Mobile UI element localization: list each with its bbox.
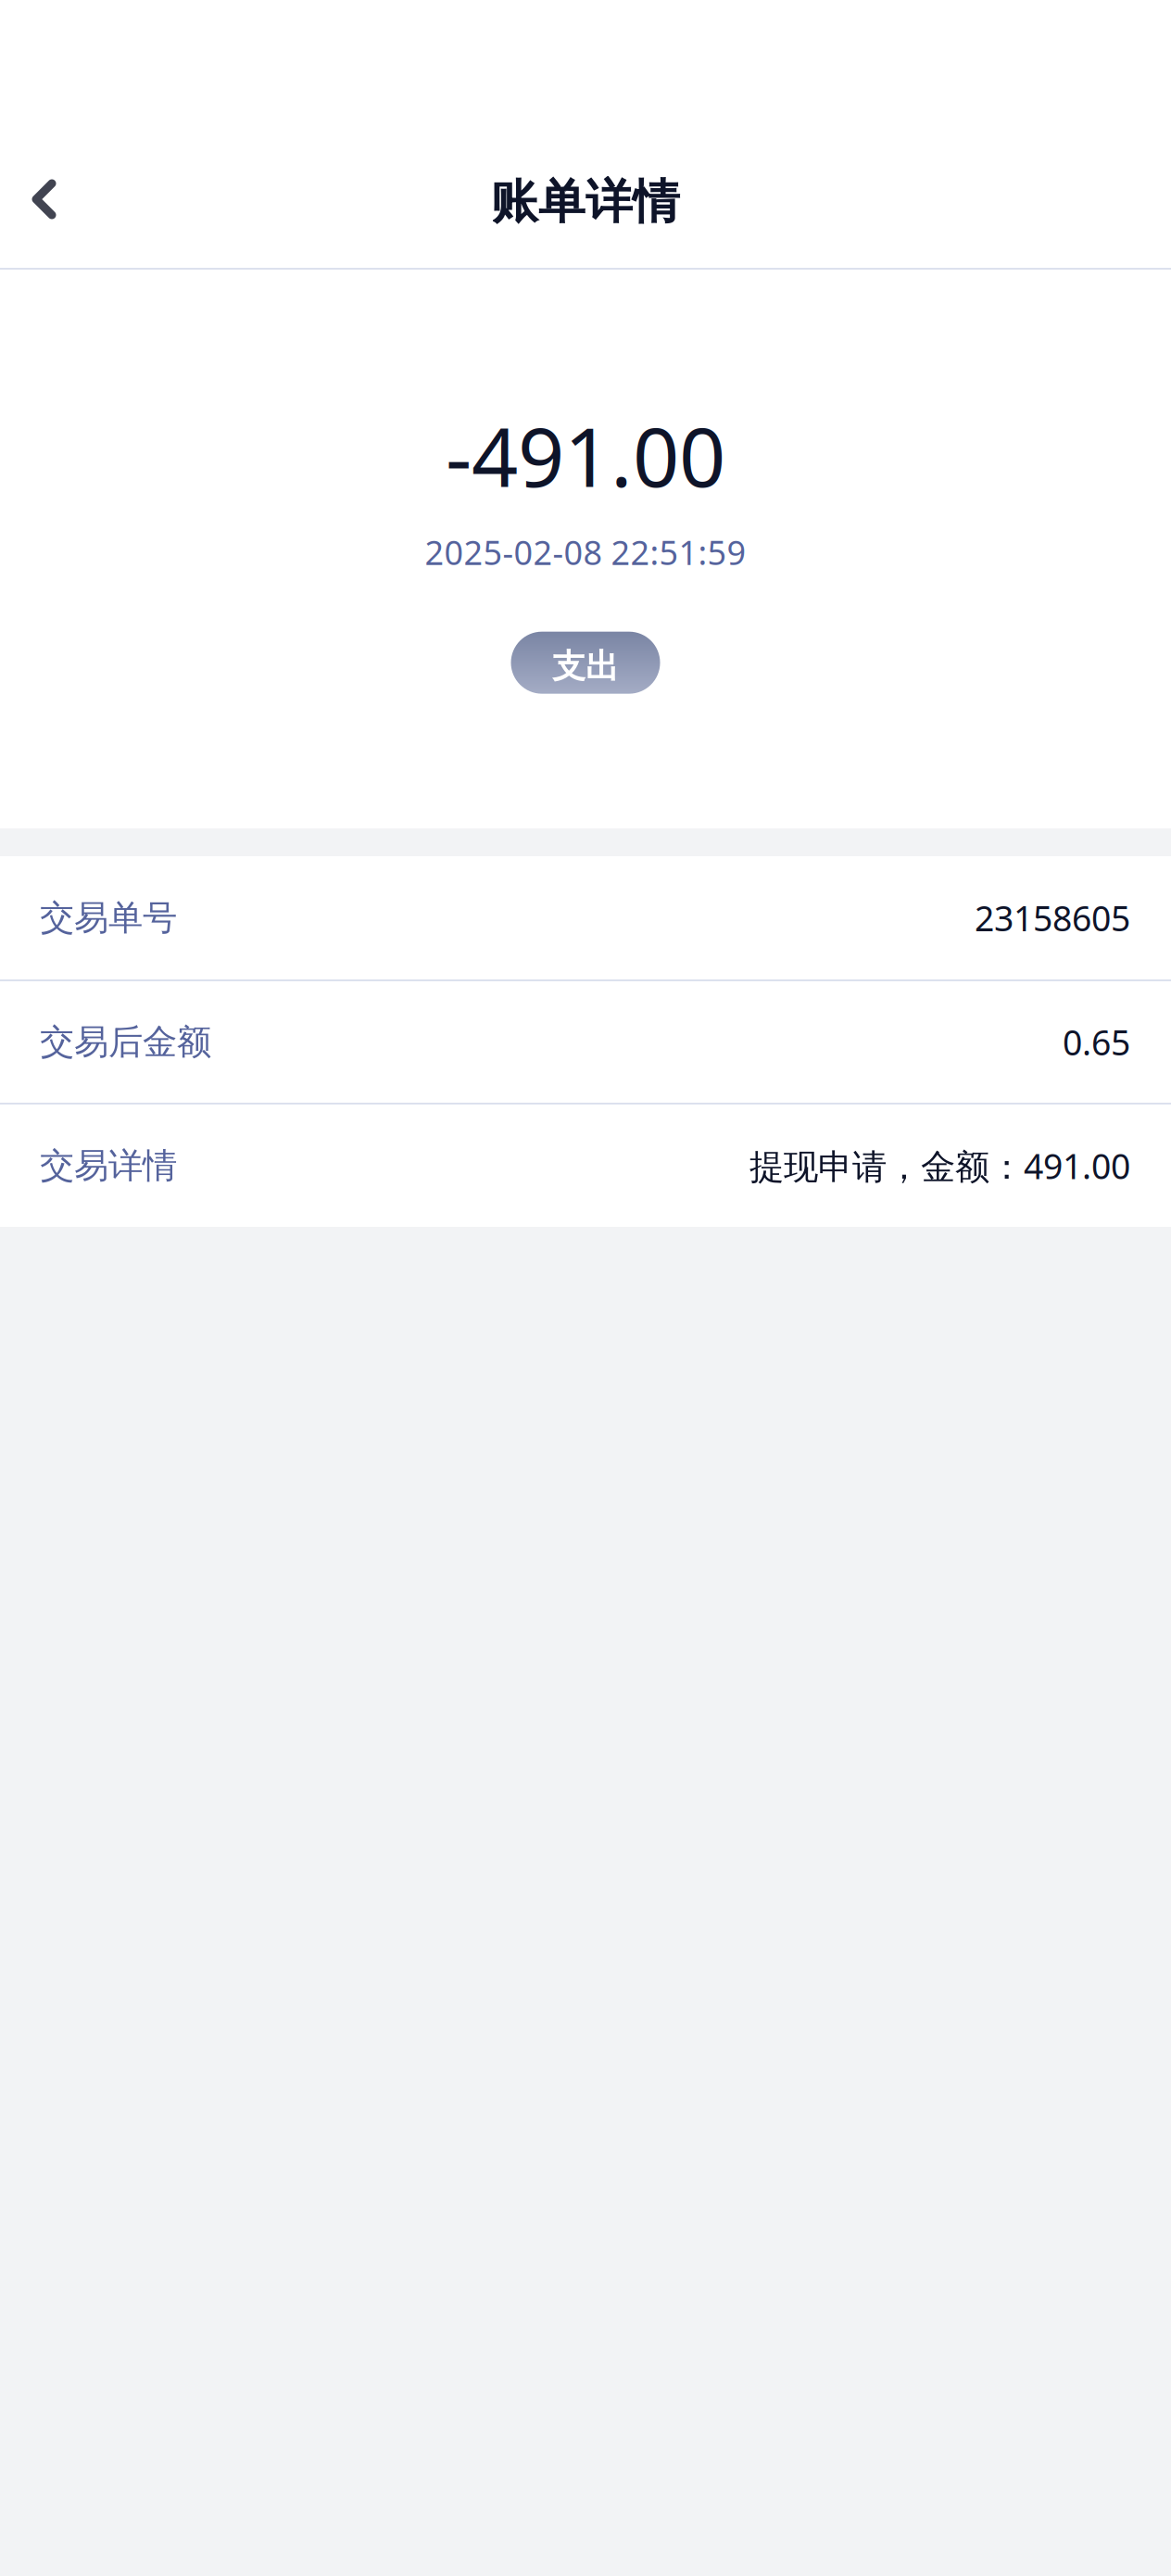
button[interactable]: 交易后金额: [0, 981, 1171, 1103]
staticText: 交易后金额: [40, 1021, 211, 1063]
staticText: 0.65: [1063, 1019, 1130, 1065]
staticText: 23158605: [975, 895, 1130, 941]
button[interactable]: 交易详情: [0, 1105, 1171, 1227]
staticText: 支出: [552, 646, 619, 687]
staticText: 账单详情: [491, 173, 680, 231]
staticText: 2025-02-08 22:51:59: [425, 530, 746, 574]
button[interactable]: Back: [0, 151, 95, 253]
staticText: -491.00: [446, 401, 725, 510]
staticText: 提现申请，金额：491.00: [749, 1143, 1130, 1189]
staticText: 交易详情: [40, 1144, 177, 1187]
staticText: 交易单号: [40, 897, 177, 939]
button[interactable]: 交易单号: [0, 856, 1171, 979]
